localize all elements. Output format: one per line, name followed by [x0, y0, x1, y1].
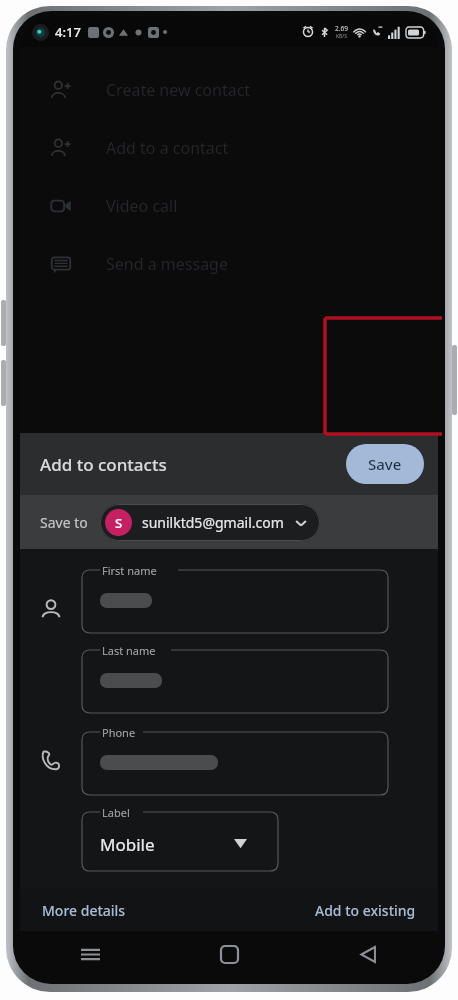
staticText: Create new contact	[106, 79, 251, 101]
button[interactable]: Add to a contact	[20, 119, 438, 177]
staticText: S	[115, 514, 123, 532]
button[interactable]: Recent apps	[20, 931, 160, 977]
button[interactable]: Home	[160, 931, 299, 977]
staticText: Add to a contact	[106, 137, 229, 159]
staticText: Add to existing	[315, 901, 416, 920]
button[interactable]: Send a message	[20, 235, 438, 293]
button[interactable]: More details	[20, 891, 148, 930]
staticText: KB/S	[336, 33, 347, 40]
button[interactable]: First name	[82, 563, 388, 633]
button[interactable]: S	[100, 504, 320, 541]
staticText: First name	[102, 563, 157, 578]
staticText: Label	[102, 805, 130, 820]
button[interactable]: Save	[346, 444, 424, 484]
staticText: Video call	[106, 195, 178, 217]
staticText: Last name	[102, 643, 156, 658]
staticText: Send a message	[106, 253, 228, 275]
staticText: 2.69	[335, 24, 348, 33]
button[interactable]: Create new contact	[20, 61, 438, 119]
button[interactable]: Back	[299, 931, 438, 977]
button[interactable]: Phone	[82, 725, 388, 795]
staticText: 4:17	[55, 23, 81, 41]
staticText: Save	[368, 454, 402, 474]
button[interactable]: Video call	[20, 177, 438, 235]
staticText: Phone	[102, 725, 136, 740]
staticText: sunilktd5@gmail.com	[142, 513, 284, 532]
staticText: Mobile	[100, 833, 155, 856]
button[interactable]: Last name	[82, 643, 388, 713]
button[interactable]: Label	[82, 805, 278, 871]
button[interactable]: Add to existing	[293, 891, 438, 930]
staticText: Save to	[40, 513, 88, 532]
staticText: Add to contacts	[40, 453, 167, 476]
staticText: More details	[42, 901, 126, 920]
